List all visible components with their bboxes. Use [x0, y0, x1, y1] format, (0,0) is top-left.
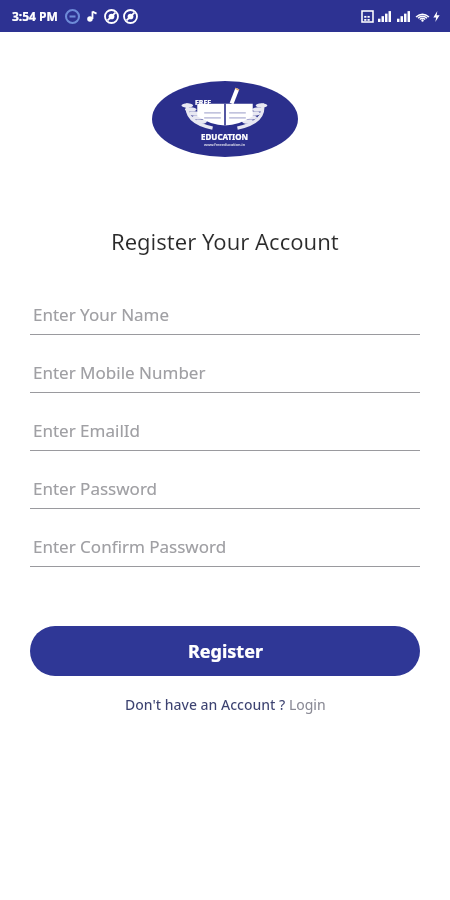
button[interactable]: Enter Password — [0, 468, 450, 526]
staticText: Enter Password — [33, 477, 158, 500]
button[interactable]: Don't have an Account ? Login — [117, 691, 334, 718]
staticText: EDUCATION — [201, 131, 249, 142]
button[interactable]: Enter Confirm Password — [0, 526, 450, 584]
staticText: Register Your Account — [111, 226, 339, 256]
other: Free Education logo — [152, 81, 298, 157]
staticText: Don't have an Account ? Login — [125, 695, 326, 714]
button[interactable]: Register — [30, 626, 420, 676]
button[interactable]: Enter EmailId — [0, 410, 450, 468]
staticText: Enter Your Name — [33, 303, 170, 326]
button[interactable]: Enter Mobile Number — [0, 352, 450, 410]
staticText: Register — [188, 639, 263, 664]
staticText: FREE — [195, 98, 212, 108]
staticText: Enter EmailId — [33, 419, 140, 442]
staticText: 3:54 PM — [12, 8, 58, 24]
button[interactable]: Enter Your Name — [0, 294, 450, 352]
staticText: Enter Confirm Password — [33, 535, 227, 558]
staticText: www.freeeducation.in — [204, 142, 246, 147]
staticText: Enter Mobile Number — [33, 361, 206, 384]
